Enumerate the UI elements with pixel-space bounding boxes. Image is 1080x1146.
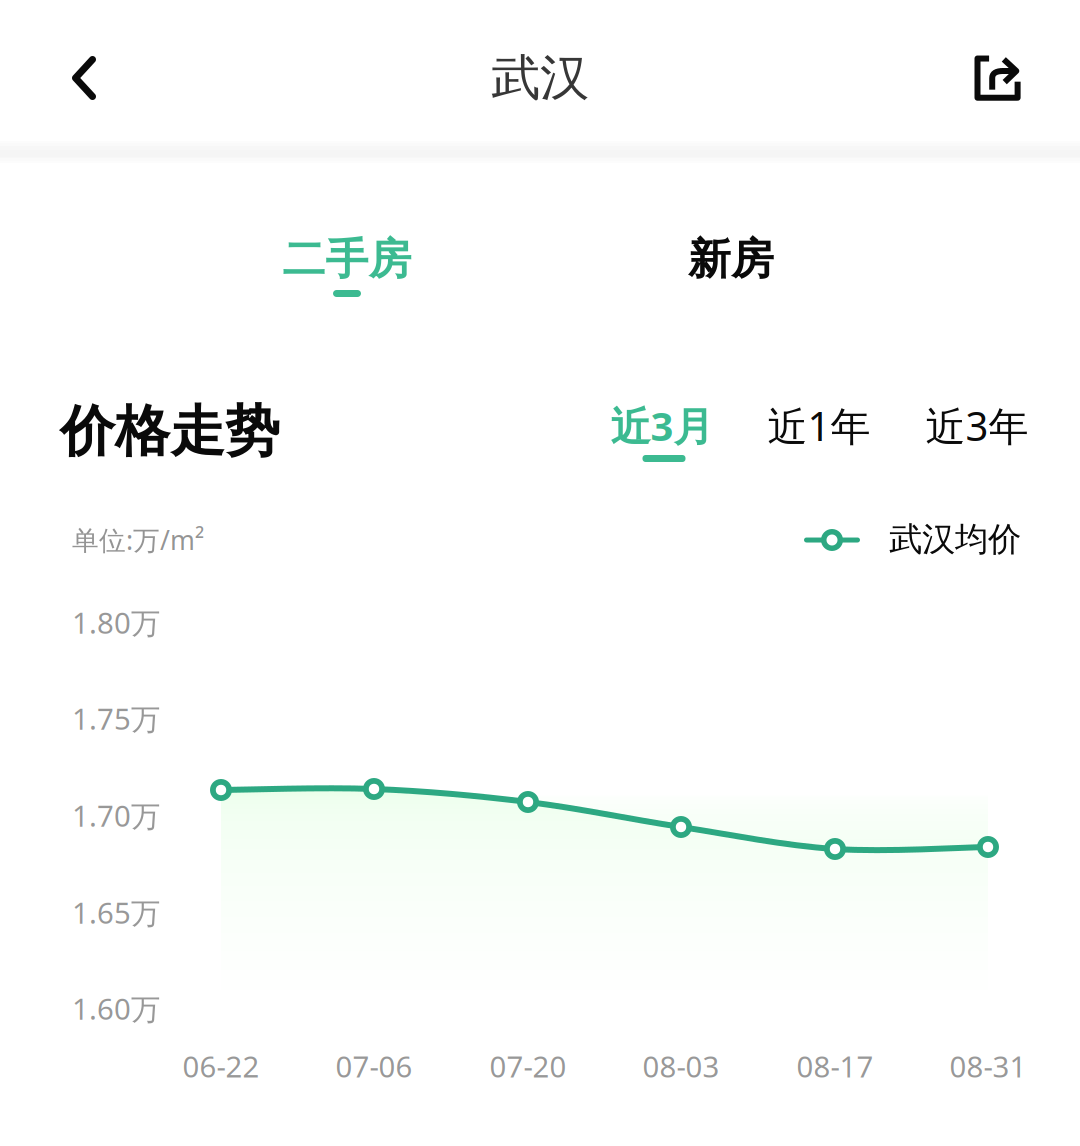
staticText: 近3年 xyxy=(925,399,1028,452)
staticText: 07-20 xyxy=(489,1046,566,1085)
staticText: 07-06 xyxy=(335,1046,412,1085)
staticText: 1.75万 xyxy=(72,699,160,738)
staticText: 武汉 xyxy=(491,48,589,108)
staticText: 近1年 xyxy=(767,399,870,452)
staticText: 06-22 xyxy=(182,1046,259,1085)
button[interactable]: Back xyxy=(29,23,139,133)
button[interactable]: 近3月 xyxy=(592,387,732,483)
staticText: 1.65万 xyxy=(72,893,160,932)
button[interactable]: 近1年 xyxy=(749,387,889,483)
staticText: 08-03 xyxy=(642,1046,719,1085)
button[interactable]: 新房 xyxy=(601,202,861,320)
button[interactable]: 二手房 xyxy=(217,202,477,320)
staticText: 二手房 xyxy=(282,233,411,285)
staticText: 近3月 xyxy=(610,399,713,452)
staticText: 08-17 xyxy=(796,1046,873,1085)
button[interactable]: 近3年 xyxy=(907,387,1047,483)
staticText: 单位:万/m² xyxy=(72,522,204,557)
staticText: 武汉均价 xyxy=(889,519,1021,560)
button[interactable]: Share xyxy=(943,24,1053,134)
staticText: 新房 xyxy=(688,233,774,285)
staticText: 08-31 xyxy=(949,1046,1026,1085)
staticText: 1.60万 xyxy=(72,989,160,1028)
staticText: 价格走势 xyxy=(60,398,280,465)
staticText: 1.70万 xyxy=(72,796,160,835)
staticText: 1.80万 xyxy=(72,603,160,642)
